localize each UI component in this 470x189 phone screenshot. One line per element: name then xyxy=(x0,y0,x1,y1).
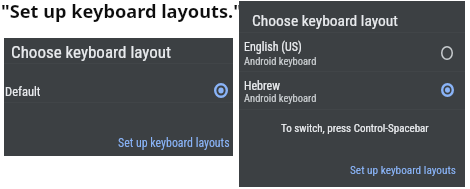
staticText: To switch, press Control-Spacebar xyxy=(281,122,429,135)
staticText: Choose keyboard layout xyxy=(11,42,172,62)
button[interactable]: English (US) xyxy=(239,32,465,71)
button[interactable]: Set up keyboard layouts xyxy=(116,134,232,152)
staticText: Choose keyboard layout xyxy=(252,12,398,30)
other: Selected keyboard layout xyxy=(441,83,454,97)
button[interactable]: Hebrew xyxy=(239,71,465,109)
staticText: Set up keyboard layouts xyxy=(118,136,230,150)
other: Selected keyboard layout xyxy=(214,83,228,98)
staticText: "Set up keyboard layouts." xyxy=(1,0,242,24)
staticText: Hebrew xyxy=(244,79,280,93)
staticText: Default xyxy=(5,84,41,99)
staticText: Set up keyboard layouts xyxy=(350,164,456,177)
staticText: English (US) xyxy=(244,40,302,54)
staticText: Android keyboard xyxy=(244,55,317,67)
staticText: Android keyboard xyxy=(244,92,317,104)
button[interactable]: Default xyxy=(4,63,233,102)
button[interactable]: Set up keyboard layouts xyxy=(348,162,458,179)
other: Select keyboard layout xyxy=(441,46,453,60)
